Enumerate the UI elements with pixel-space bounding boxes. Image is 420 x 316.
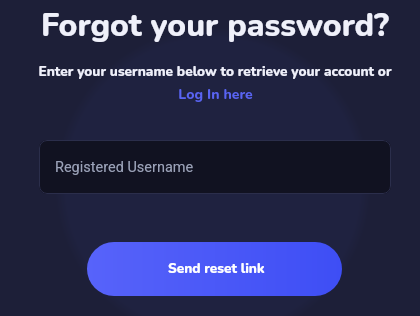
staticText: Forgot your password? [5, 4, 420, 48]
staticText: Registered Username [55, 159, 194, 176]
staticText: Enter your username below to retrieve yo… [5, 62, 420, 81]
button[interactable]: Log In here [176, 85, 255, 104]
button[interactable]: Registered Username [39, 140, 391, 194]
button[interactable]: Send reset link [87, 242, 342, 296]
staticText: Send reset link [168, 259, 265, 278]
